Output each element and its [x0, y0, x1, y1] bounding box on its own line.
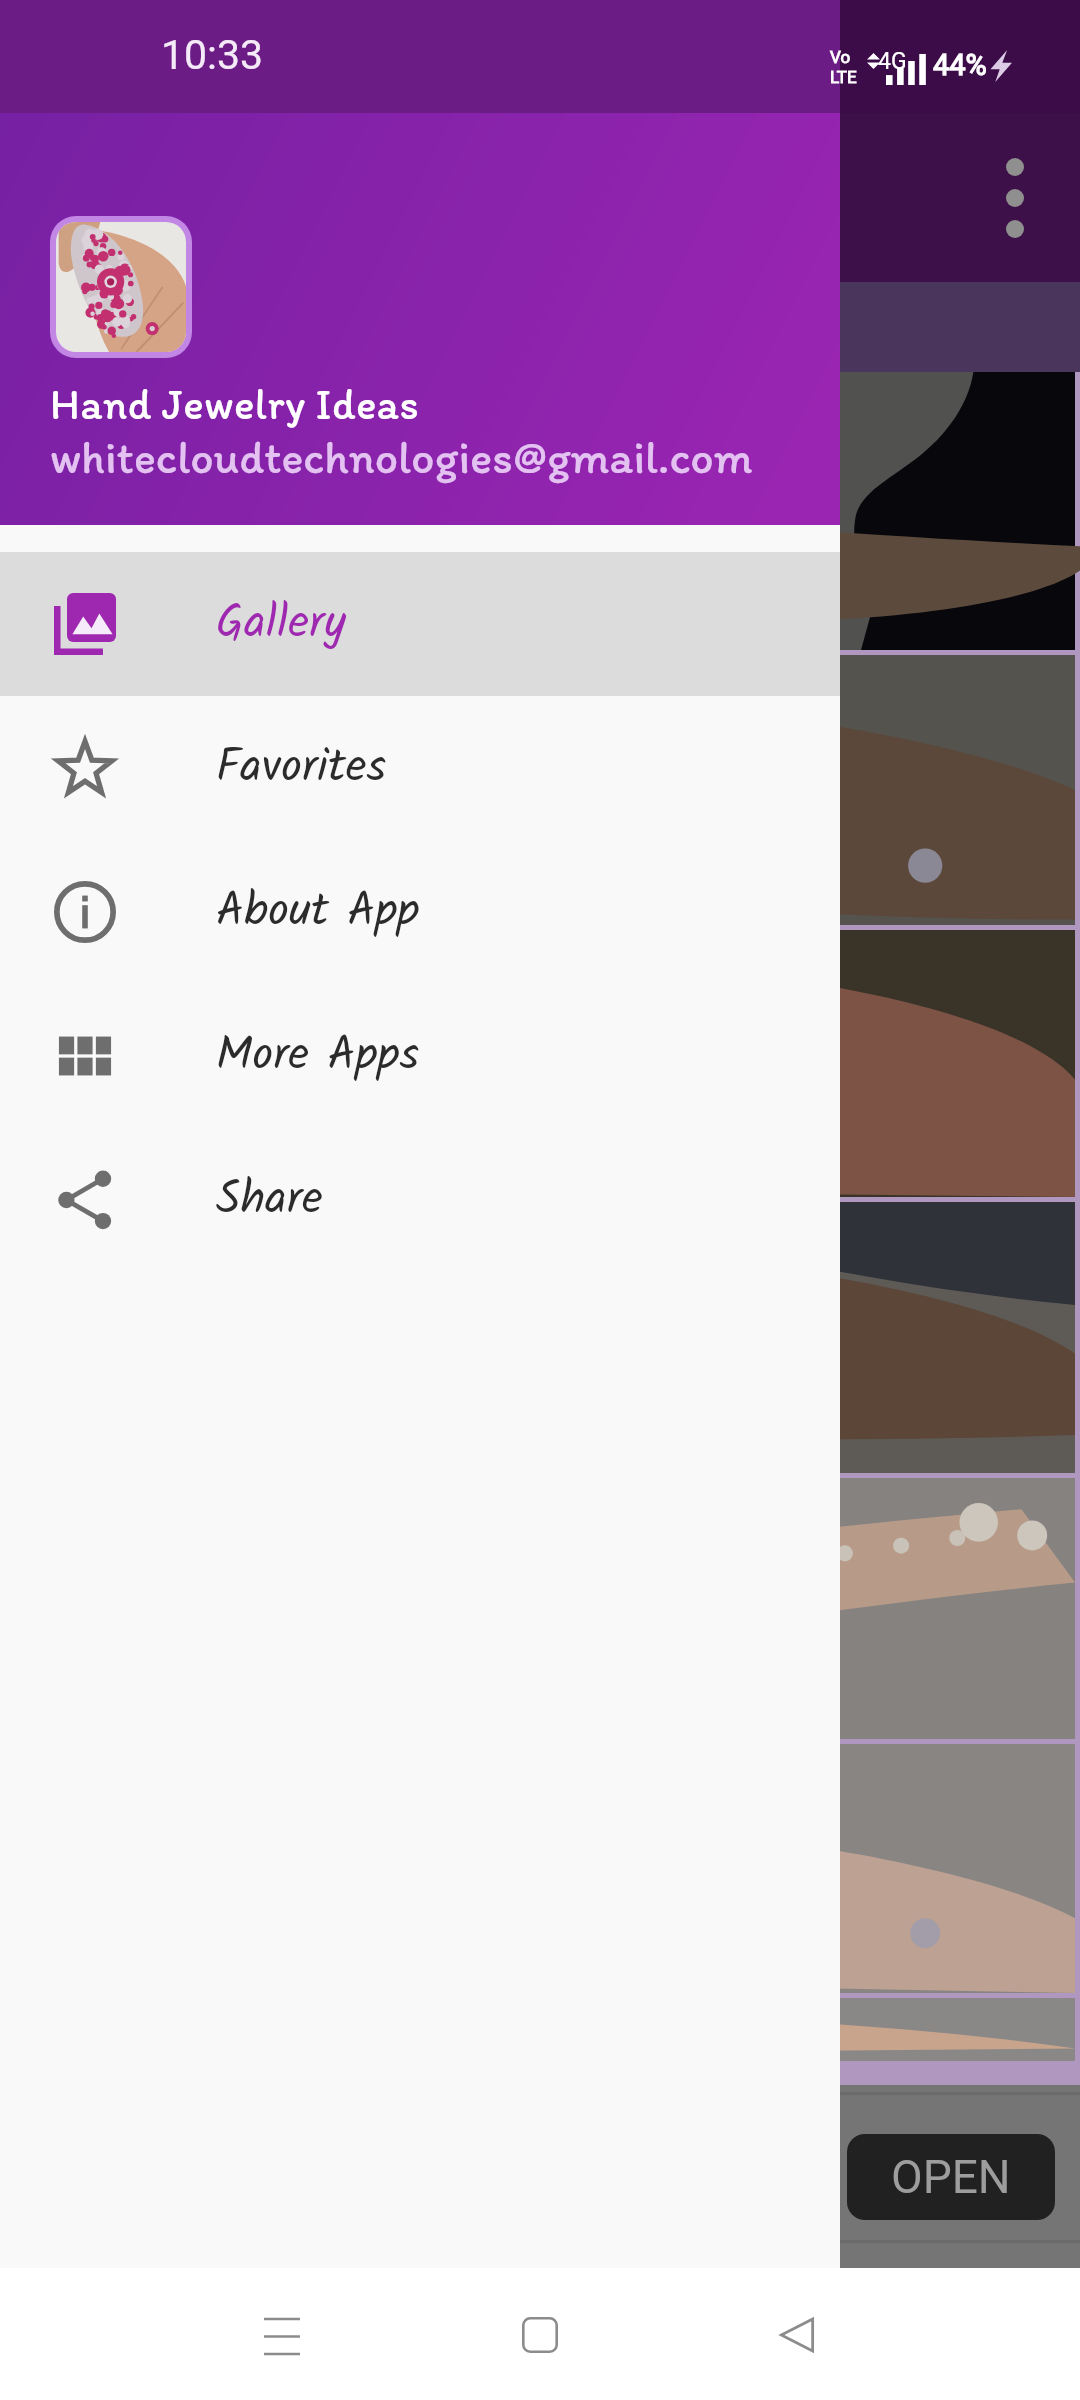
staticText: whitecloudtechnologies@gmail.com	[50, 429, 753, 484]
staticText: 4G	[878, 48, 907, 75]
staticText: Share	[216, 1164, 323, 1237]
staticText: 10:33	[161, 31, 264, 79]
button[interactable]: Share	[0, 1128, 840, 1272]
staticText: Favorites	[216, 732, 387, 805]
staticText: Vo	[830, 47, 851, 67]
button[interactable]: Home	[480, 2275, 600, 2395]
button[interactable]: Recent apps	[222, 2275, 342, 2395]
button[interactable]: More options	[1006, 158, 1024, 238]
button[interactable]: More Apps	[0, 984, 840, 1128]
button[interactable]: Gallery	[0, 552, 840, 696]
button[interactable]	[5, 655, 1075, 925]
staticText: LTE	[830, 67, 857, 87]
button[interactable]: Back	[737, 2275, 857, 2395]
staticText: More Apps	[216, 1020, 420, 1093]
button[interactable]	[5, 372, 1075, 650]
staticText: OPEN	[891, 2150, 1011, 2204]
button[interactable]	[5, 1744, 1075, 1993]
button[interactable]: OPEN	[847, 2134, 1055, 2220]
staticText: Hand Jewelry Ideas	[50, 378, 419, 430]
button[interactable]	[5, 1202, 1075, 1473]
staticText: About App	[216, 876, 420, 949]
button[interactable]	[5, 1478, 1075, 1739]
staticText: Gallery	[216, 588, 346, 661]
button[interactable]: Favorites	[0, 696, 840, 840]
button[interactable]	[5, 1998, 1075, 2061]
button[interactable]	[5, 930, 1075, 1197]
staticText: 44%	[933, 48, 987, 82]
button[interactable]: About App	[0, 840, 840, 984]
